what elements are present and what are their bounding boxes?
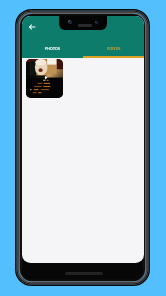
staticText: PHOTOS xyxy=(45,46,61,51)
button[interactable]: PHOTOS xyxy=(22,41,83,55)
button[interactable] xyxy=(26,59,63,98)
button[interactable]: Back xyxy=(24,19,40,35)
staticText: VIDEOS xyxy=(107,46,121,51)
button[interactable]: VIDEOS xyxy=(83,41,144,55)
